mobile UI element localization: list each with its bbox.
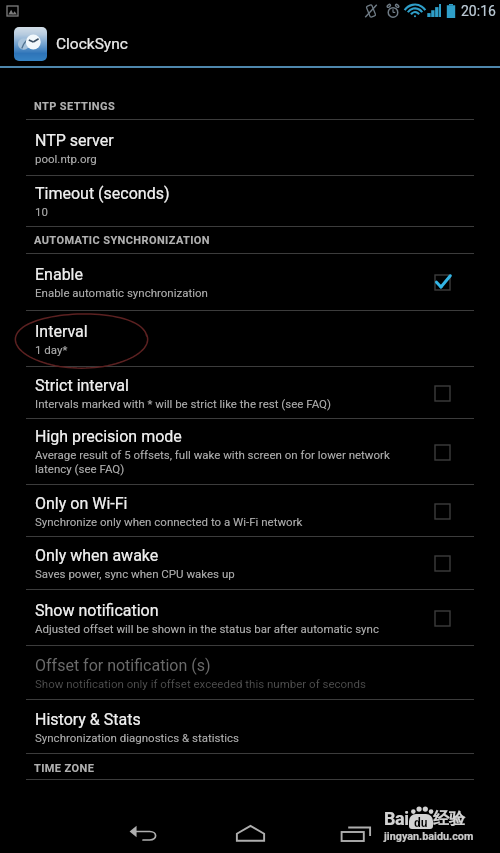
button[interactable]: Enable bbox=[0, 254, 500, 310]
staticText: Strict interval bbox=[35, 376, 129, 395]
button[interactable]: Back bbox=[103, 809, 183, 853]
button[interactable]: Timeout (seconds) bbox=[0, 176, 500, 226]
staticText: Only on Wi-Fi bbox=[35, 494, 128, 513]
staticText: Average result of 5 offsets, full wake w… bbox=[35, 448, 417, 476]
staticText: 经验 bbox=[433, 809, 465, 829]
staticText: Intervals marked with * will be strict l… bbox=[35, 397, 331, 410]
staticText: AUTOMATIC SYNCHRONIZATION bbox=[34, 234, 210, 247]
button[interactable]: High precision mode bbox=[0, 419, 500, 484]
staticText: Offset for notification (s) bbox=[35, 656, 211, 675]
staticText: Enable automatic synchronization bbox=[35, 286, 208, 299]
staticText: pool.ntp.org bbox=[35, 152, 97, 165]
staticText: Enable bbox=[35, 265, 83, 284]
button[interactable]: ClockSync bbox=[0, 22, 500, 66]
staticText: 10 bbox=[35, 205, 48, 218]
staticText: Saves power, sync when CPU wakes up bbox=[35, 567, 235, 580]
staticText: TIME ZONE bbox=[34, 762, 95, 775]
staticText: Adjusted offset will be shown in the sta… bbox=[35, 622, 379, 635]
staticText: Only when awake bbox=[35, 546, 159, 565]
staticText: du bbox=[414, 816, 428, 830]
button[interactable]: Only on Wi-Fi bbox=[0, 485, 500, 536]
staticText: Timeout (seconds) bbox=[35, 184, 170, 203]
button[interactable]: Only when awake bbox=[0, 537, 500, 589]
staticText: 1 day* bbox=[35, 343, 68, 356]
button[interactable]: Recent apps bbox=[316, 809, 396, 853]
staticText: Synchronize only when connected to a Wi-… bbox=[35, 515, 303, 528]
button[interactable]: Show notification bbox=[0, 590, 500, 645]
staticText: 20:16 bbox=[461, 3, 496, 19]
staticText: Show notification bbox=[35, 601, 159, 620]
button[interactable]: Interval bbox=[0, 311, 500, 366]
button[interactable]: NTP server bbox=[0, 120, 500, 175]
staticText: Bai bbox=[384, 808, 409, 829]
staticText: Show notification only if offset exceede… bbox=[35, 677, 366, 690]
staticText: Interval bbox=[35, 322, 88, 341]
staticText: ClockSync bbox=[56, 35, 128, 53]
staticText: jingyan.baidu.com bbox=[384, 830, 474, 843]
staticText: NTP server bbox=[35, 131, 114, 150]
button[interactable]: Strict interval bbox=[0, 367, 500, 418]
staticText: Synchronization diagnostics & statistics bbox=[35, 731, 239, 744]
button[interactable]: Offset for notification (s) bbox=[0, 646, 500, 699]
staticText: NTP SETTINGS bbox=[34, 100, 116, 113]
staticText: High precision mode bbox=[35, 427, 182, 446]
button[interactable]: History & Stats bbox=[0, 700, 500, 753]
button[interactable]: Home bbox=[210, 808, 290, 853]
staticText: History & Stats bbox=[35, 710, 141, 729]
